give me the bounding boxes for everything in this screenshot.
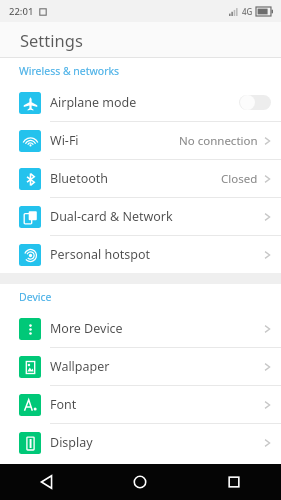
button[interactable]: Display: [0, 424, 281, 461]
button[interactable]: Back: [0, 464, 93, 500]
staticText: Wi-Fi: [50, 132, 79, 149]
button[interactable]: Bluetooth: [0, 160, 281, 197]
staticText: Settings: [20, 29, 83, 51]
staticText: Display: [50, 434, 93, 451]
staticText: Wireless & networks: [19, 64, 120, 78]
staticText: No connection: [179, 133, 258, 149]
button[interactable]: Airplane mode: [0, 84, 281, 121]
staticText: Personal hotspot: [50, 246, 151, 263]
button[interactable]: Wallpaper: [0, 348, 281, 385]
staticText: 22:01: [9, 5, 34, 18]
button[interactable]: Recents: [187, 464, 281, 500]
staticText: Font: [50, 396, 77, 413]
button[interactable]: Airplane mode toggle: [239, 94, 271, 111]
button[interactable]: More Device: [0, 310, 281, 347]
staticText: More Device: [50, 320, 123, 337]
staticText: Airplane mode: [50, 94, 137, 111]
button[interactable]: Wi-Fi: [0, 122, 281, 159]
staticText: Bluetooth: [50, 170, 109, 187]
staticText: 4G: [242, 6, 253, 17]
button[interactable]: Font: [0, 386, 281, 423]
staticText: Closed: [221, 171, 258, 187]
staticText: Device: [19, 290, 52, 304]
staticText: Dual-card & Network: [50, 208, 173, 225]
button[interactable]: Personal hotspot: [0, 236, 281, 273]
button[interactable]: Dual-card & Network: [0, 198, 281, 235]
staticText: Wallpaper: [50, 358, 110, 375]
button[interactable]: Home: [93, 464, 187, 500]
